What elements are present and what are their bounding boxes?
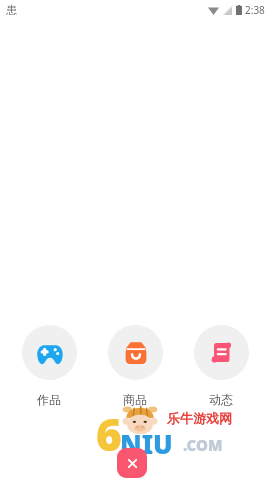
staticText: 6 bbox=[96, 404, 122, 464]
staticText: 2:38 bbox=[245, 3, 265, 17]
button[interactable]: 商品 bbox=[98, 325, 172, 407]
staticText: .COM bbox=[183, 435, 223, 455]
staticText: 乐牛游戏网 bbox=[167, 410, 232, 426]
staticText: 作品 bbox=[37, 392, 61, 407]
staticText: NIU bbox=[120, 426, 173, 461]
staticText: 患 bbox=[6, 3, 17, 17]
button[interactable]: 作品 bbox=[12, 325, 86, 407]
staticText: 动态 bbox=[209, 392, 233, 407]
staticText: 商品 bbox=[123, 392, 147, 407]
button[interactable]: 动态 bbox=[184, 325, 258, 407]
button[interactable]: Close bbox=[117, 448, 147, 478]
